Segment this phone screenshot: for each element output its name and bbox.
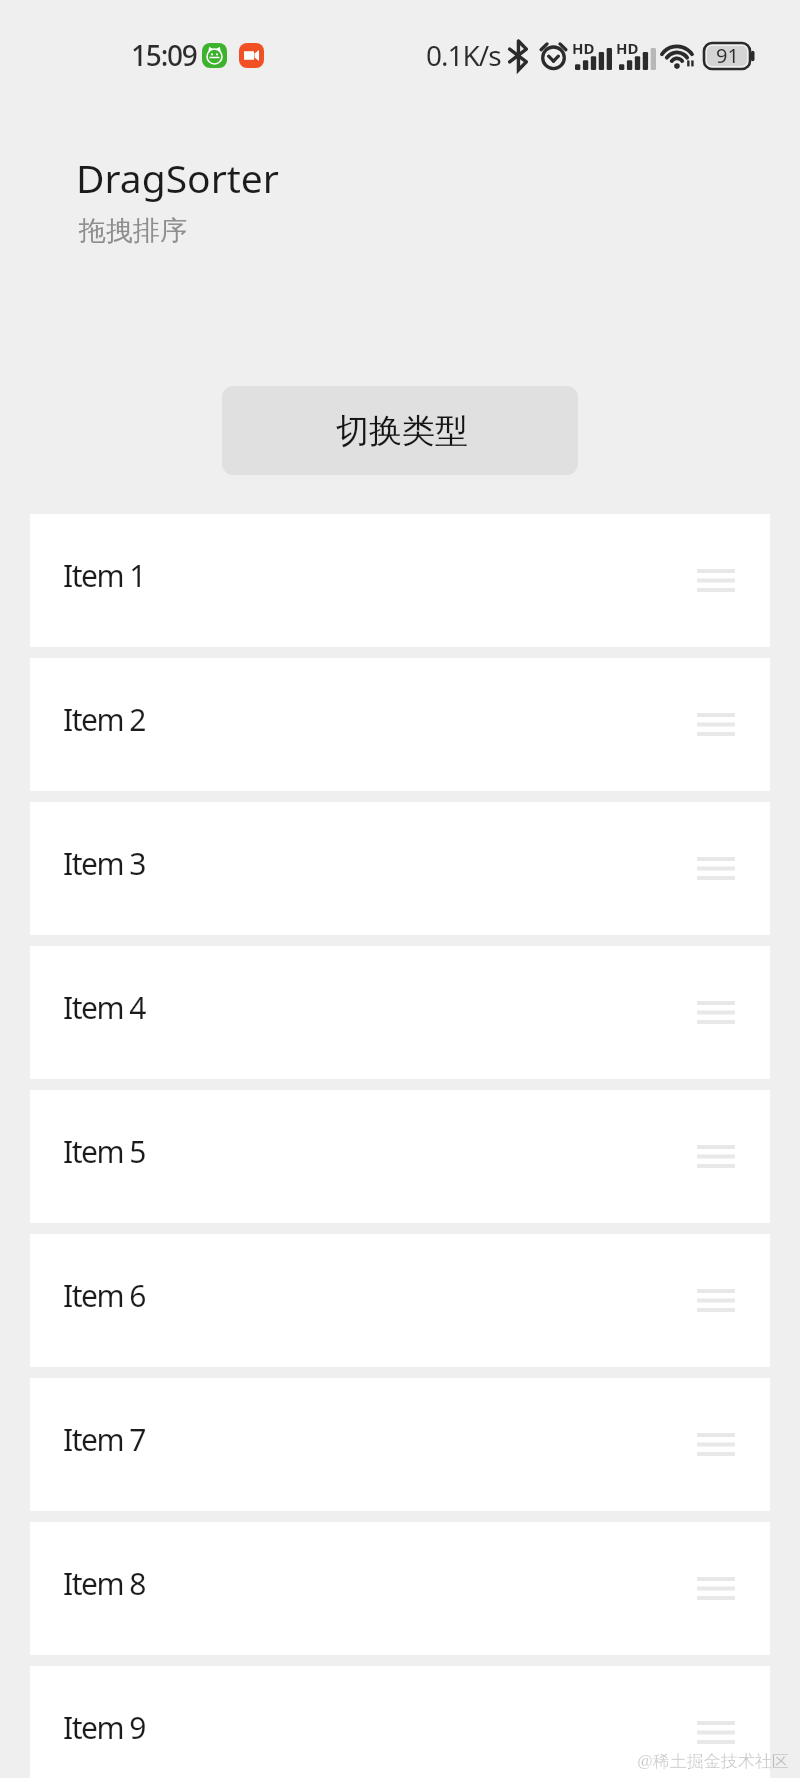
button[interactable]: Item 2 — [30, 658, 770, 791]
staticText: Item 4 — [63, 987, 145, 1028]
button[interactable]: Item 7 — [30, 1378, 770, 1511]
button[interactable]: Reorder handle, drag to move item — [682, 1699, 750, 1767]
button[interactable]: Reorder handle, drag to move item — [682, 835, 750, 903]
button[interactable]: Reorder handle, drag to move item — [682, 1411, 750, 1479]
button[interactable]: Reorder handle, drag to move item — [682, 691, 750, 759]
button[interactable]: Item 6 — [30, 1234, 770, 1367]
staticText: Item 7 — [63, 1419, 145, 1460]
staticText: Item 8 — [63, 1563, 145, 1604]
button[interactable]: Reorder handle, drag to move item — [682, 979, 750, 1047]
staticText: Item 9 — [63, 1707, 145, 1748]
staticText: 拖拽排序 — [79, 214, 187, 248]
staticText: 0.1K/s — [426, 36, 501, 74]
staticText: 切换类型 — [336, 410, 468, 452]
button[interactable]: Item 1 — [30, 514, 770, 647]
staticText: Item 1 — [63, 555, 145, 596]
staticText: Item 2 — [63, 699, 145, 740]
button[interactable]: Reorder handle, drag to move item — [682, 547, 750, 615]
button[interactable]: Item 9 — [30, 1666, 770, 1778]
staticText: 91 — [716, 42, 739, 68]
button[interactable]: Reorder handle, drag to move item — [682, 1123, 750, 1191]
button[interactable]: Item 4 — [30, 946, 770, 1079]
staticText: 15:09 — [131, 36, 197, 74]
staticText: Item 3 — [63, 843, 145, 884]
staticText: Item 6 — [63, 1275, 145, 1316]
staticText: HD — [572, 38, 595, 58]
button[interactable]: Item 3 — [30, 802, 770, 935]
staticText: Item 5 — [63, 1131, 145, 1172]
staticText: DragSorter — [76, 151, 279, 204]
button[interactable]: Item 5 — [30, 1090, 770, 1223]
button[interactable]: Item 8 — [30, 1522, 770, 1655]
staticText: HD — [616, 38, 639, 58]
staticText: @稀土掘金技术社区 — [637, 1749, 789, 1772]
button[interactable]: 切换类型 — [222, 386, 578, 475]
button[interactable]: Reorder handle, drag to move item — [682, 1555, 750, 1623]
button[interactable]: Reorder handle, drag to move item — [682, 1267, 750, 1335]
